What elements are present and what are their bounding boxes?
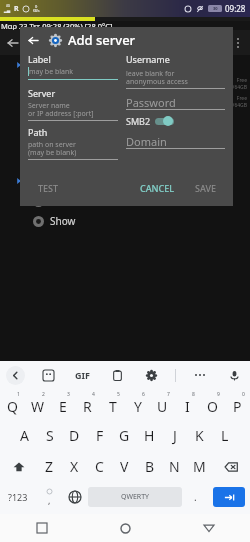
button[interactable]: M (187, 451, 212, 482)
staticText: ?123 (8, 491, 28, 503)
staticText: Server name or IP address [:port] (28, 101, 94, 118)
button[interactable]: A (12, 420, 37, 451)
button[interactable]: J (162, 420, 187, 451)
button[interactable]: F (87, 420, 112, 451)
button[interactable]: SMB2 (126, 115, 174, 127)
staticText: QWERTY (121, 492, 150, 502)
staticText: 7 (167, 391, 170, 398)
staticText: path on server (may be blank) (28, 140, 77, 157)
button[interactable]: Change language (62, 482, 88, 512)
button[interactable]: Next (213, 487, 245, 507)
button[interactable]: 6 (125, 389, 150, 420)
button[interactable]: Backspace (212, 451, 250, 482)
staticText: KB/s (33, 9, 40, 13)
button[interactable]: QWERTY (88, 487, 182, 507)
button[interactable]: V (112, 451, 137, 482)
staticText: D (69, 426, 80, 445)
staticText: K (195, 426, 204, 445)
staticText: Y (134, 397, 142, 416)
staticText: 4G (6, 4, 10, 8)
staticText: SAVE (195, 182, 217, 194)
staticText: Free 29GB/64GB (219, 77, 247, 91)
staticText: I (185, 397, 190, 416)
button[interactable]: 4 (75, 389, 100, 420)
staticText: DLNA (42, 174, 69, 188)
staticText: 3 (67, 391, 70, 398)
staticText: E (59, 397, 67, 416)
staticText: G (119, 426, 130, 445)
staticText: GIF (75, 369, 90, 381)
button[interactable]: Back (20, 27, 46, 53)
button[interactable]: H (137, 420, 162, 451)
staticText: Εσωτ. κοινόχρ. αποθ. χώρος (49, 79, 155, 90)
button[interactable]: TEST (30, 178, 67, 198)
button[interactable]: Stickers (38, 365, 58, 385)
staticText: R (14, 4, 19, 14)
staticText: P (233, 397, 242, 416)
button[interactable]: B (137, 451, 162, 482)
staticText: H (144, 426, 155, 445)
staticText: 09:28 (225, 3, 246, 14)
button[interactable]: More (190, 365, 210, 385)
button[interactable]: Comma (36, 482, 62, 512)
staticText: 4 (92, 391, 95, 398)
staticText: 0 (35, 4, 38, 9)
button[interactable]: 0 (225, 389, 250, 420)
button[interactable]: SAVE (189, 178, 223, 198)
button[interactable]: D (62, 420, 87, 451)
button[interactable]: Z (37, 451, 62, 482)
staticText: Free 29GB/64GB (219, 95, 247, 109)
button[interactable]: X (62, 451, 87, 482)
button[interactable]: Clipboard (107, 365, 127, 385)
staticText: TEST (38, 182, 59, 194)
button[interactable]: Voice input (224, 365, 244, 385)
button[interactable]: ?123 (0, 482, 36, 512)
button[interactable]: Free 29GB/64GB (0, 93, 250, 111)
staticText: 5 (117, 391, 120, 398)
staticText: SMB2 (126, 115, 151, 127)
button[interactable]: LAN (0, 55, 250, 75)
staticText: Password (126, 95, 176, 109)
button[interactable]: . (182, 482, 208, 512)
button[interactable]: Εσωτ. κοινόχρ. αποθ. χώρος (0, 75, 250, 93)
button[interactable]: 5 (100, 389, 125, 420)
staticText: 8 (192, 391, 195, 398)
button[interactable]: Back (0, 30, 25, 55)
button[interactable]: Show (0, 211, 250, 231)
button[interactable]: Shift (0, 451, 37, 482)
button[interactable]: 7 (150, 389, 175, 420)
button[interactable]: 3 (50, 389, 75, 420)
staticText: X-plore (31, 34, 75, 52)
staticText: 1 (17, 391, 20, 398)
button[interactable]: DLNA (0, 171, 250, 191)
button[interactable]: Back (167, 514, 250, 542)
button[interactable]: Settings (141, 365, 161, 385)
staticText: S (46, 426, 54, 445)
button[interactable]: L (212, 420, 237, 451)
button[interactable]: More options (228, 33, 248, 53)
button[interactable]: K (187, 420, 212, 451)
staticText: L (221, 426, 229, 445)
staticText: Add server (68, 31, 136, 49)
button[interactable]: 9 (200, 389, 225, 420)
button[interactable]: S (37, 420, 62, 451)
button[interactable]: G (112, 420, 137, 451)
button[interactable]: Vault (0, 191, 250, 211)
button[interactable]: 2 (25, 389, 50, 420)
button[interactable]: GIF (71, 365, 94, 385)
button[interactable]: Recent apps (0, 514, 84, 542)
button[interactable]: 8 (175, 389, 200, 420)
staticText: B (145, 457, 155, 476)
button[interactable]: 1 (0, 389, 25, 420)
button[interactable]: C (87, 451, 112, 482)
staticText: ▂▄ (4, 8, 11, 13)
staticText: 30 (213, 6, 218, 11)
button[interactable]: Home (84, 514, 167, 542)
button[interactable]: N (162, 451, 187, 482)
button[interactable]: Back (6, 366, 25, 385)
staticText: W (31, 397, 45, 416)
button[interactable]: CANCEL (134, 178, 181, 198)
staticText: Μαρ 23 Τετ 09:28 (30%) [28,0°C] (1, 21, 113, 30)
